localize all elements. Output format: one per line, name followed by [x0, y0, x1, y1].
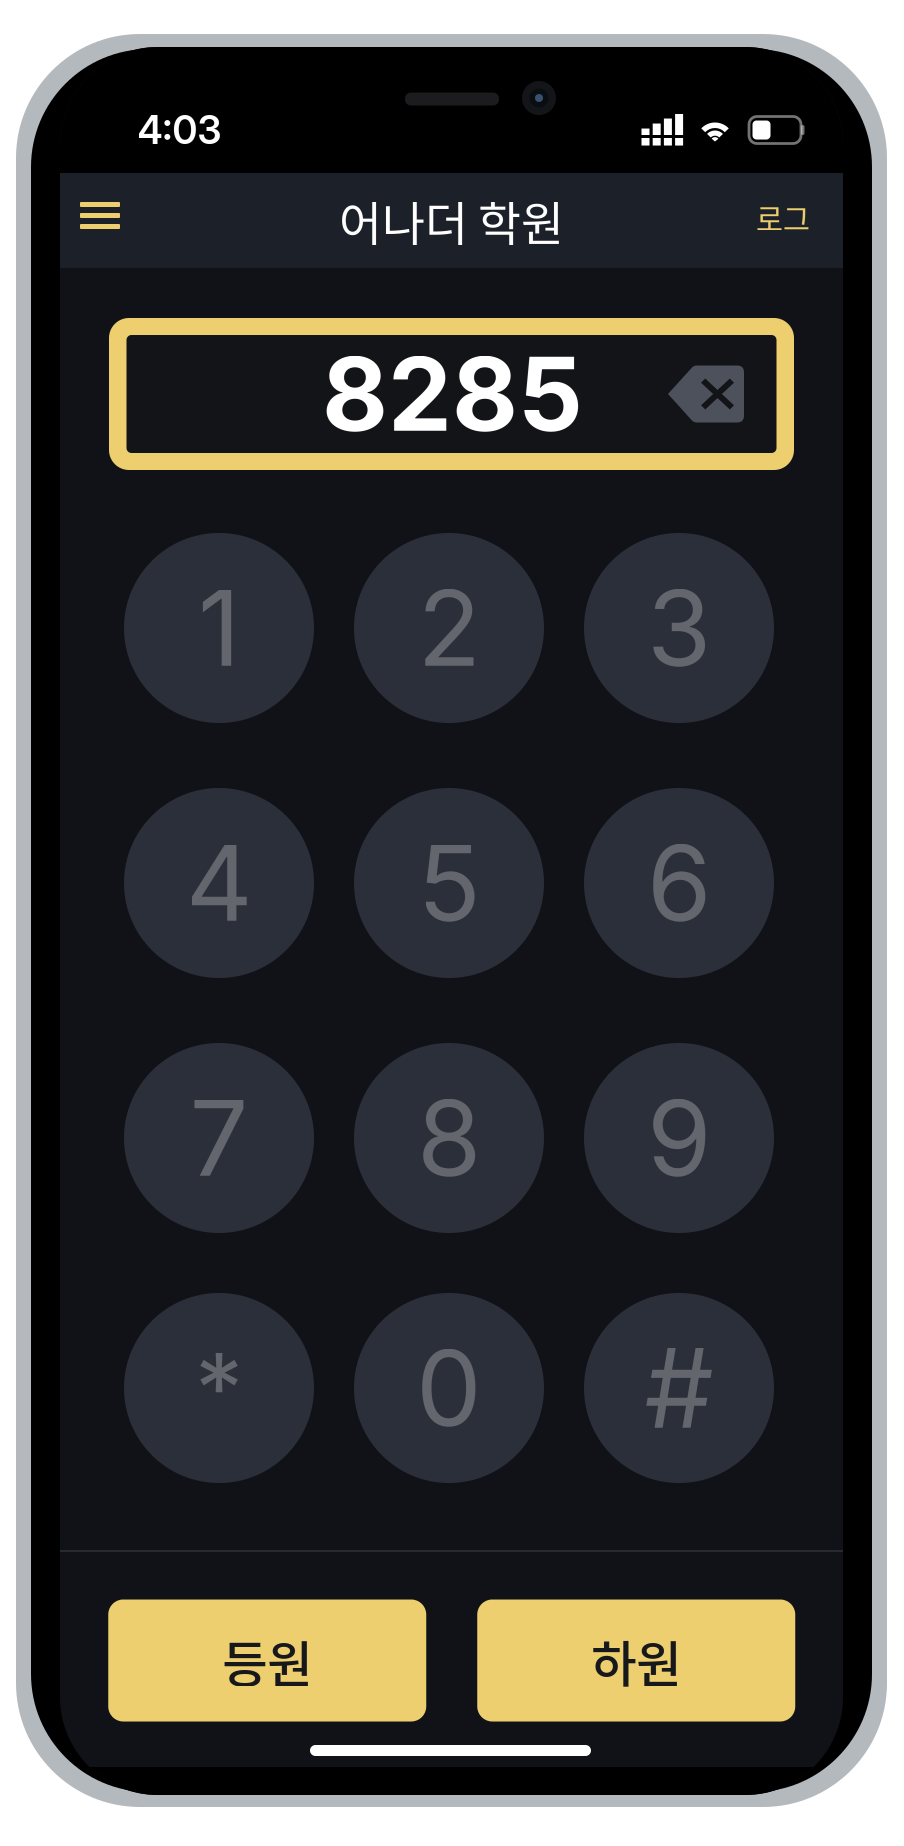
button[interactable]: 0: [354, 1293, 544, 1483]
staticText: 2: [417, 565, 480, 691]
staticText: 5: [417, 820, 480, 946]
staticText: 8: [417, 1075, 481, 1201]
staticText: 6: [647, 820, 711, 946]
button[interactable]: 9: [584, 1043, 774, 1233]
staticText: #: [644, 1322, 713, 1454]
button[interactable]: #: [584, 1293, 774, 1483]
staticText: 1: [198, 565, 240, 691]
staticText: *: [195, 1330, 243, 1446]
button[interactable]: 6: [584, 788, 774, 978]
staticText: 0: [416, 1325, 482, 1451]
staticText: 4:03: [137, 107, 221, 153]
button[interactable]: Log: [723, 173, 843, 268]
staticText: 어나더 학원: [339, 187, 564, 254]
button[interactable]: Delete: [668, 365, 744, 422]
staticText: 9: [647, 1075, 711, 1201]
staticText: 등원: [222, 1625, 312, 1696]
button[interactable]: Menu: [60, 173, 140, 268]
button[interactable]: 2: [354, 533, 544, 723]
button[interactable]: 7: [124, 1043, 314, 1233]
staticText: 3: [647, 565, 711, 691]
staticText: 7: [189, 1075, 248, 1201]
staticText: 8285: [322, 333, 583, 455]
button[interactable]: 등원: [108, 1599, 426, 1721]
button[interactable]: *: [124, 1293, 314, 1483]
button[interactable]: 3: [584, 533, 774, 723]
button[interactable]: 하원: [477, 1599, 795, 1721]
button[interactable]: 1: [124, 533, 314, 723]
staticText: 로그: [756, 196, 810, 239]
button[interactable]: 4: [124, 788, 314, 978]
button[interactable]: 8: [354, 1043, 544, 1233]
button[interactable]: 5: [354, 788, 544, 978]
staticText: 4: [185, 820, 252, 946]
staticText: 하원: [591, 1625, 681, 1696]
